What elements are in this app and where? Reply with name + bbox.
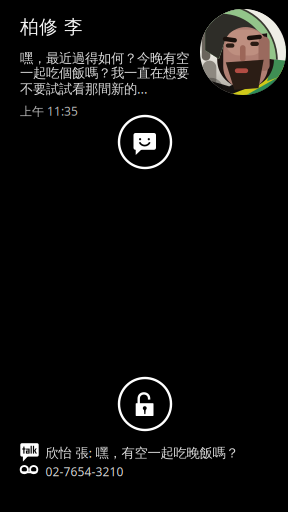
button[interactable]: Reply with message [118, 115, 172, 169]
staticText: 嘿，最近過得如何？今晚有空一起吃個飯嗎？我一直在想要不要試試看那間新的… [20, 50, 189, 97]
button[interactable]: 欣怡 張: 嘿，有空一起吃晚飯嗎？ [20, 443, 288, 463]
button[interactable]: Unlock [118, 377, 172, 431]
staticText: 02-7654-3210 [46, 464, 124, 479]
staticText: 欣怡 張: 嘿，有空一起吃晚飯嗎？ [46, 444, 239, 461]
button[interactable]: 02-7654-3210 [20, 462, 288, 478]
staticText: 上午 11:35 [20, 103, 78, 119]
staticText: 柏修 李 [20, 15, 83, 38]
